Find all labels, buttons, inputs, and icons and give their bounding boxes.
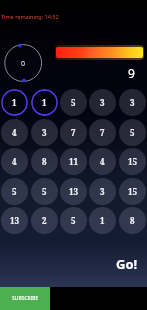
button[interactable]: 15 [119,178,146,205]
button[interactable]: 11 [60,148,87,175]
staticText: 8 [42,156,47,167]
staticText: 1 [42,97,47,108]
staticText: Time remaining: 14:52 [1,13,59,20]
staticText: 15 [128,156,138,167]
button[interactable]: 3 [31,119,58,146]
button[interactable]: 5 [31,178,58,205]
button[interactable]: 7 [89,119,116,146]
button[interactable]: 8 [31,148,58,175]
staticText: 9 [128,65,135,81]
staticText: 3 [130,97,135,108]
button[interactable]: 8 [119,207,146,234]
button[interactable]: 15 [119,148,146,175]
button[interactable]: 1 [1,89,28,116]
staticText: 5 [71,215,76,226]
button[interactable]: 13 [1,207,28,234]
staticText: 4 [100,156,105,167]
staticText: SUBSCRIBE [12,295,39,302]
button[interactable]: 5 [60,89,87,116]
button[interactable]: 5 [60,207,87,234]
button[interactable]: 5 [119,119,146,146]
staticText: 11 [69,156,79,167]
button[interactable]: 4 [1,119,28,146]
staticText: 5 [130,127,135,138]
staticText: 13 [69,186,79,197]
button[interactable]: SUBSCRIBE [0,287,50,310]
button[interactable]: Go! [112,254,142,274]
button[interactable]: 4 [89,148,116,175]
staticText: 4 [12,127,17,138]
staticText: 5 [42,186,47,197]
staticText: Go! [116,255,138,273]
staticText: 8 [130,215,135,226]
button[interactable]: 13 [60,178,87,205]
staticText: 5 [71,97,76,108]
staticText: 5 [12,186,17,197]
button[interactable]: 3 [119,89,146,116]
staticText: 3 [100,186,105,197]
staticText: 15 [128,186,138,197]
button[interactable]: 3 [89,89,116,116]
staticText: 1 [12,97,17,108]
button[interactable]: 2 [31,207,58,234]
staticText: 3 [100,97,105,108]
staticText: 7 [100,127,105,138]
button[interactable]: 4 [1,148,28,175]
staticText: 2 [42,215,47,226]
staticText: 13 [10,215,20,226]
button[interactable]: 1 [89,207,116,234]
staticText: 3 [42,127,47,138]
button[interactable]: 7 [60,119,87,146]
staticText: 7 [71,127,76,138]
button[interactable]: 1 [31,89,58,116]
staticText: 1 [100,215,105,226]
staticText: 0 [21,59,26,69]
staticText: 4 [12,156,17,167]
button[interactable]: 3 [89,178,116,205]
button[interactable]: 5 [1,178,28,205]
